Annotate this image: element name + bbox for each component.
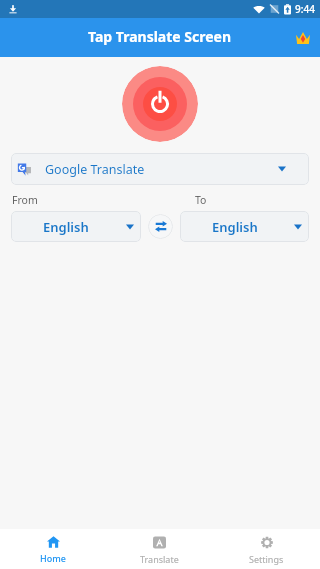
staticText: To: [195, 193, 207, 207]
staticText: 9:44: [295, 2, 315, 16]
button[interactable]: English: [11, 211, 141, 242]
staticText: From: [12, 193, 38, 207]
button[interactable]: Home: [0, 531, 106, 569]
staticText: Translate: [140, 553, 179, 565]
staticText: Tap Translate Screen: [88, 27, 232, 46]
button[interactable]: Settings: [213, 531, 320, 569]
button[interactable]: Translate: [106, 531, 213, 569]
button[interactable]: Google Translate: [11, 153, 309, 185]
staticText: Google Translate: [45, 161, 145, 178]
button[interactable]: Power: [122, 66, 198, 142]
button[interactable]: Swap languages: [148, 214, 173, 239]
staticText: English: [212, 218, 258, 236]
staticText: Home: [40, 552, 66, 564]
button[interactable]: English: [180, 211, 309, 242]
button[interactable]: Premium: [289, 24, 317, 52]
staticText: English: [43, 218, 89, 236]
staticText: Settings: [249, 553, 284, 565]
